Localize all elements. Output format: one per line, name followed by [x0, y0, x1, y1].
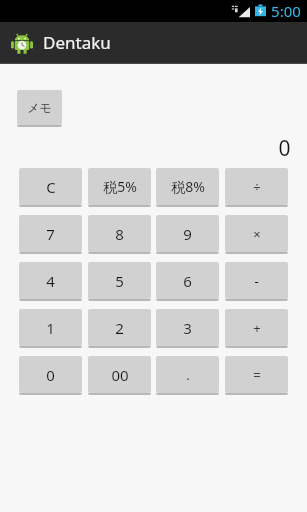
- button[interactable]: =: [225, 356, 288, 395]
- button[interactable]: .: [156, 356, 219, 395]
- staticText: 00: [111, 365, 129, 385]
- staticText: 2: [115, 318, 124, 338]
- staticText: 5: [115, 271, 124, 291]
- staticText: =: [253, 366, 261, 384]
- staticText: 3: [183, 318, 192, 338]
- staticText: メモ: [27, 100, 52, 115]
- staticText: 0: [46, 365, 55, 385]
- staticText: C: [46, 177, 56, 197]
- staticText: .: [186, 366, 190, 384]
- staticText: 1: [46, 318, 55, 338]
- button[interactable]: メモ: [17, 90, 62, 127]
- staticText: 7: [46, 224, 55, 244]
- staticText: 0: [278, 134, 291, 160]
- button[interactable]: 3: [156, 309, 219, 348]
- button[interactable]: 1: [19, 309, 82, 348]
- staticText: +: [253, 319, 261, 337]
- button[interactable]: C: [19, 168, 82, 207]
- button[interactable]: 4: [19, 262, 82, 301]
- button[interactable]: -: [225, 262, 288, 301]
- staticText: Dentaku: [43, 31, 111, 54]
- button[interactable]: +: [225, 309, 288, 348]
- button[interactable]: 8: [88, 215, 151, 254]
- button[interactable]: 7: [19, 215, 82, 254]
- staticText: 9: [183, 224, 192, 244]
- button[interactable]: ×: [225, 215, 288, 254]
- staticText: 4: [46, 271, 55, 291]
- staticText: 6: [183, 271, 192, 291]
- staticText: 8: [115, 224, 124, 244]
- button[interactable]: 9: [156, 215, 219, 254]
- button[interactable]: 5: [88, 262, 151, 301]
- staticText: -: [254, 272, 259, 290]
- button[interactable]: 0: [19, 356, 82, 395]
- button[interactable]: 6: [156, 262, 219, 301]
- staticText: 5:00: [271, 1, 301, 21]
- staticText: 税5%: [103, 177, 137, 196]
- button[interactable]: 税5%: [88, 168, 151, 207]
- staticText: ×: [253, 225, 261, 243]
- button[interactable]: 2: [88, 309, 151, 348]
- button[interactable]: ÷: [225, 168, 288, 207]
- button[interactable]: 税8%: [156, 168, 219, 207]
- button[interactable]: 00: [88, 356, 151, 395]
- staticText: ÷: [253, 178, 261, 196]
- staticText: 税8%: [171, 177, 205, 196]
